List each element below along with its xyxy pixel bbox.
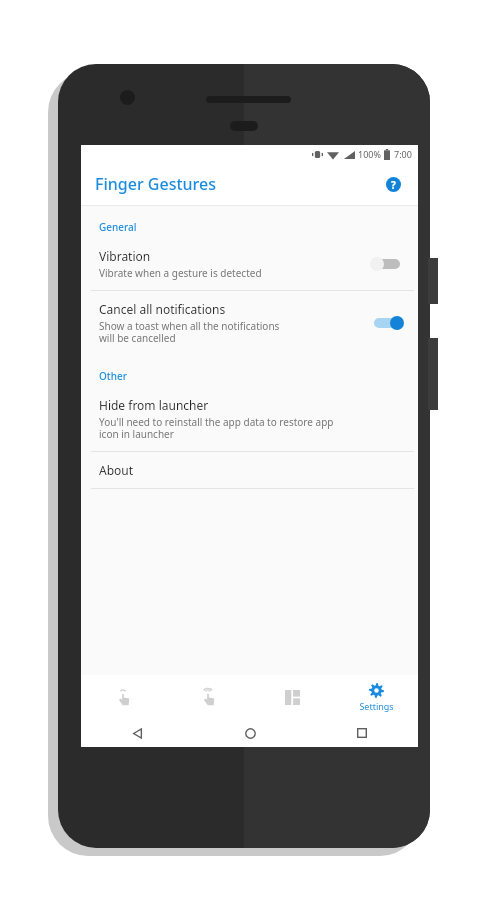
button[interactable]: About	[81, 452, 418, 488]
button[interactable]: Vibration	[81, 238, 418, 290]
button[interactable]: Help	[380, 171, 406, 197]
button[interactable]: Layouts	[250, 675, 334, 719]
staticText: Other	[99, 369, 127, 383]
staticText: Settings	[359, 700, 394, 712]
button[interactable]	[370, 313, 404, 333]
button[interactable]: Hide from launcher	[81, 387, 418, 451]
staticText: Show a toast when all the notifications …	[99, 319, 280, 345]
staticText: About	[99, 462, 134, 478]
staticText: General	[99, 220, 137, 234]
staticText: You'll need to reinstall the app data to…	[99, 415, 334, 441]
staticText: Vibrate when a gesture is detected	[99, 266, 262, 280]
staticText: Hide from launcher	[99, 397, 209, 413]
button[interactable]: Home	[194, 719, 306, 747]
staticText: 7:00	[394, 148, 412, 160]
button[interactable]: Back	[81, 719, 194, 747]
staticText: Finger Gestures	[95, 173, 216, 195]
button[interactable]	[370, 254, 404, 274]
staticText: Vibration	[99, 248, 151, 264]
button[interactable]: Double tap gestures	[166, 675, 250, 719]
button[interactable]: Cancel all notifications	[81, 291, 418, 355]
button[interactable]: Single tap gestures	[81, 675, 166, 719]
staticText: ?	[391, 178, 396, 192]
button[interactable]: Settings	[334, 675, 418, 719]
button[interactable]: Recents	[306, 719, 418, 747]
staticText: 100%	[358, 148, 381, 160]
staticText: Cancel all notifications	[99, 301, 226, 317]
